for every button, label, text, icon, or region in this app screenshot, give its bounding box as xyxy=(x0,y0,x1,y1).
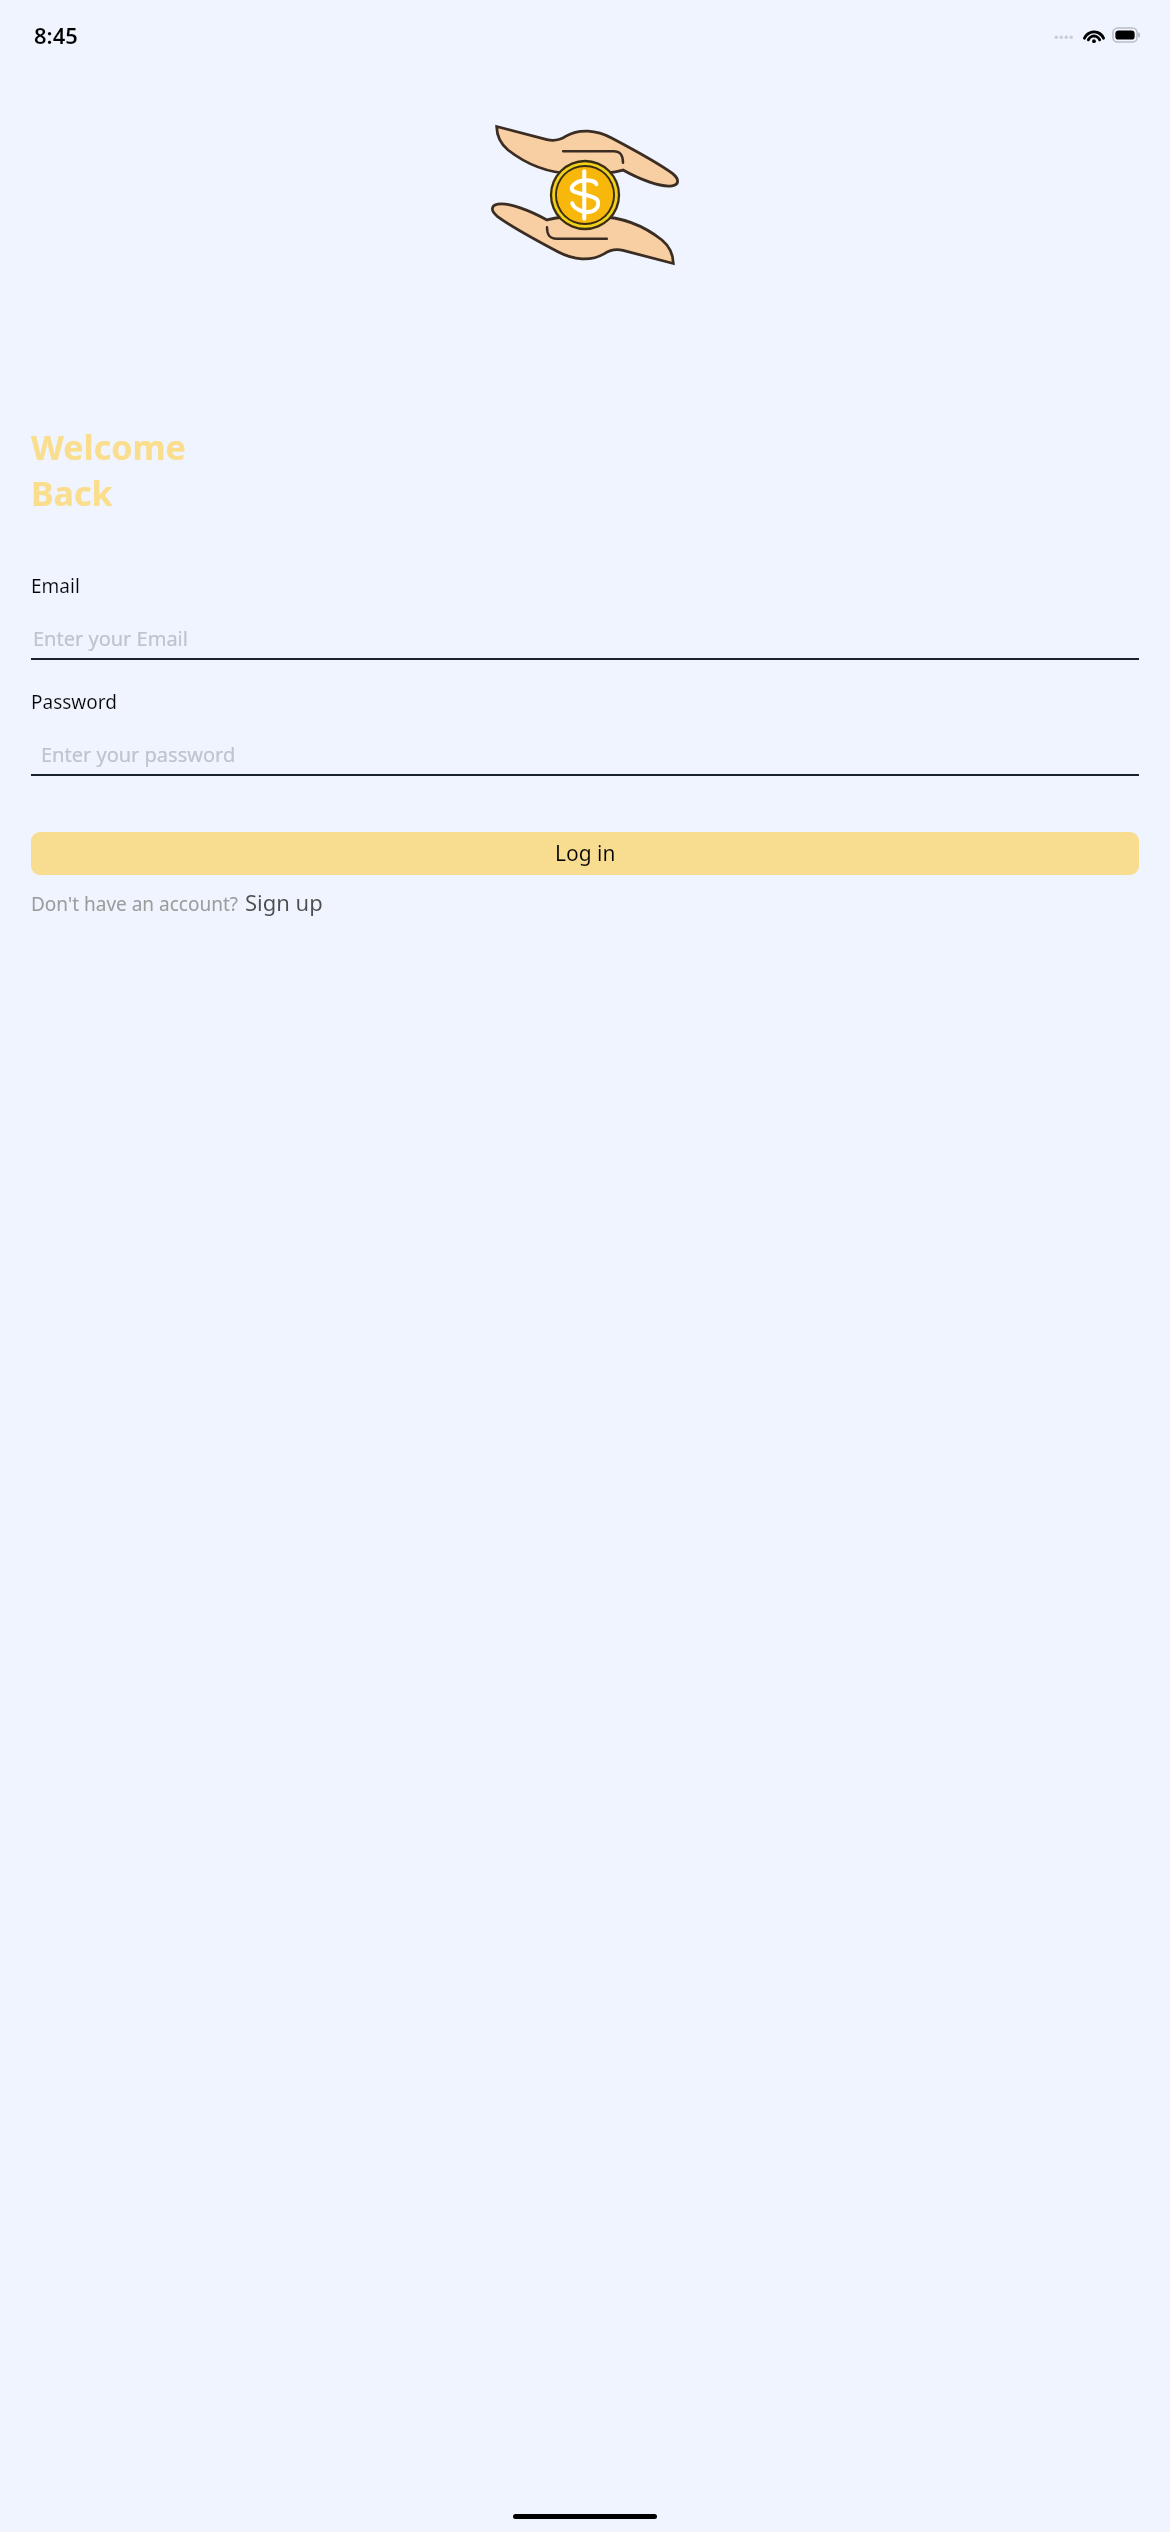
staticText: Welcome xyxy=(31,424,186,470)
staticText: Log in xyxy=(555,839,616,868)
button[interactable]: Log in xyxy=(31,832,1139,875)
staticText: Password xyxy=(31,689,117,715)
button[interactable]: Password xyxy=(31,689,1139,776)
staticText: Back xyxy=(31,470,113,516)
staticText: Email xyxy=(31,573,80,599)
staticText: 8:45 xyxy=(34,20,78,50)
button[interactable]: Sign up xyxy=(245,887,323,917)
staticText: Don't have an account? xyxy=(31,891,239,917)
button[interactable]: Email xyxy=(31,573,1139,660)
staticText: Sign up xyxy=(245,887,323,917)
staticText: Enter your password xyxy=(41,741,236,768)
staticText: Enter your Email xyxy=(33,625,188,652)
